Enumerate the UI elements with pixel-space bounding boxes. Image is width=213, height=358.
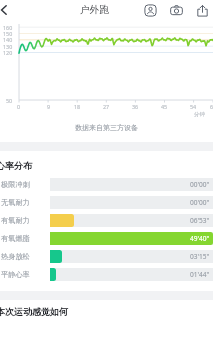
staticText: 有氧燃脂 [1, 234, 30, 243]
staticText: 有氧耐力 [1, 216, 30, 225]
button[interactable]: Medal [141, 1, 159, 19]
staticText: 49'40" [190, 234, 210, 243]
staticText: 00'00" [190, 198, 210, 207]
staticText: 心率分布 [0, 160, 32, 171]
staticText: 平静心率 [1, 270, 30, 279]
staticText: 60 [210, 103, 213, 110]
staticText: 分钟 [194, 111, 205, 118]
staticText: 50 [6, 97, 13, 104]
staticText: 18 [74, 103, 81, 110]
button[interactable]: 极限冲刺 [0, 175, 213, 193]
staticText: 27 [103, 103, 110, 110]
staticText: 140 [3, 36, 13, 43]
staticText: 无氧耐力 [1, 198, 30, 207]
staticText: 数据来自第三方设备 [75, 123, 138, 132]
button[interactable]: 热身放松 [0, 247, 213, 265]
staticText: 160 [3, 24, 13, 31]
button[interactable]: 有氧燃脂 [0, 229, 213, 247]
staticText: 极限冲刺 [1, 180, 30, 189]
staticText: 01'44" [190, 270, 210, 279]
staticText: 54 [190, 103, 197, 110]
staticText: 06'53" [190, 216, 210, 225]
staticText: 00'00" [190, 180, 210, 189]
staticText: 热身放松 [1, 252, 30, 261]
button[interactable]: Share [193, 1, 211, 19]
staticText: 03'15" [190, 252, 210, 261]
staticText: 45 [161, 103, 168, 110]
button[interactable]: 有氧耐力 [0, 211, 213, 229]
staticText: 150 [3, 30, 13, 37]
button[interactable]: Camera [167, 1, 185, 19]
staticText: 户外跑 [80, 4, 109, 16]
button[interactable]: Back [0, 1, 13, 19]
staticText: 36 [132, 103, 139, 110]
staticText: 本次运动感觉如何 [0, 306, 68, 317]
staticText: 0 [17, 103, 21, 110]
button[interactable]: 平静心率 [0, 265, 213, 283]
staticText: 9 [47, 103, 51, 110]
staticText: 120 [3, 49, 13, 56]
staticText: 130 [3, 43, 13, 50]
button[interactable]: 无氧耐力 [0, 193, 213, 211]
